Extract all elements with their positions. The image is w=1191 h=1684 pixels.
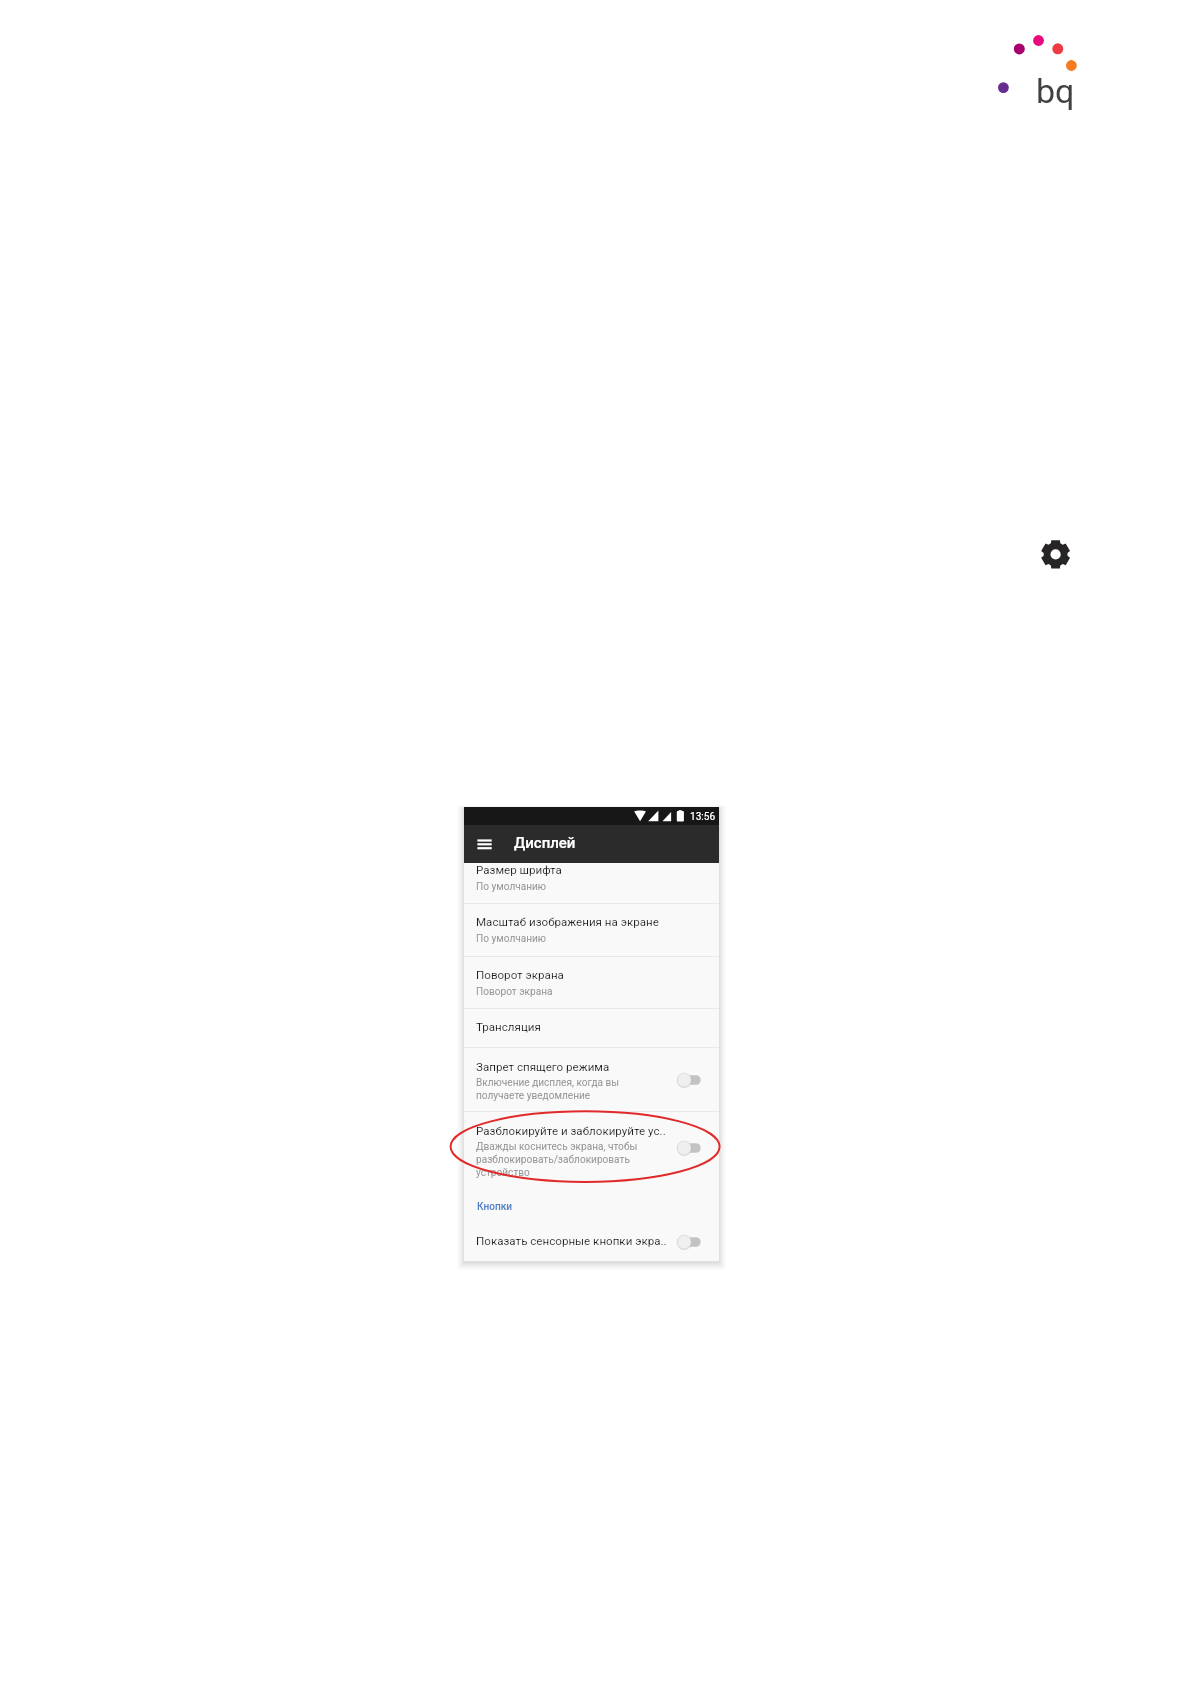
staticText: Дважды коснитесь экрана, чтобы разблокир… — [476, 1141, 638, 1179]
button[interactable] — [464, 845, 719, 903]
button[interactable]: Toggle — [670, 1070, 704, 1090]
button[interactable] — [464, 957, 719, 1008]
staticText: Включение дисплея, когда вы получаете ув… — [476, 1077, 620, 1102]
button[interactable]: Settings — [1040, 539, 1071, 570]
staticText: Трансляция — [476, 1020, 541, 1034]
button[interactable]: Toggle — [670, 1232, 704, 1252]
staticText: Дисплей — [514, 834, 576, 852]
staticText: Кнопки — [477, 1201, 513, 1213]
staticText: По умолчанию — [476, 881, 547, 893]
button[interactable]: Menu — [472, 833, 494, 855]
button[interactable] — [464, 1048, 719, 1111]
button[interactable]: Toggle — [670, 1138, 704, 1158]
staticText: Разблокируйте и заблокируйте ус.. — [476, 1124, 666, 1138]
staticText: Масштаб изображения на экране — [476, 915, 659, 929]
staticText: По умолчанию — [476, 933, 547, 945]
button[interactable] — [464, 1215, 719, 1261]
staticText: Размер шрифта — [476, 863, 562, 877]
staticText: Показать сенсорные кнопки экра.. — [476, 1234, 667, 1248]
button[interactable] — [464, 904, 719, 956]
staticText: Поворот экрана — [476, 968, 564, 982]
button[interactable]: Кнопки — [477, 1195, 537, 1213]
button[interactable] — [464, 1009, 719, 1047]
staticText: Запрет спящего режима — [476, 1060, 610, 1074]
staticText: bq — [1036, 71, 1075, 111]
button[interactable] — [464, 1112, 719, 1188]
staticText: Поворот экрана — [476, 986, 553, 998]
staticText: 13:56 — [690, 811, 716, 823]
